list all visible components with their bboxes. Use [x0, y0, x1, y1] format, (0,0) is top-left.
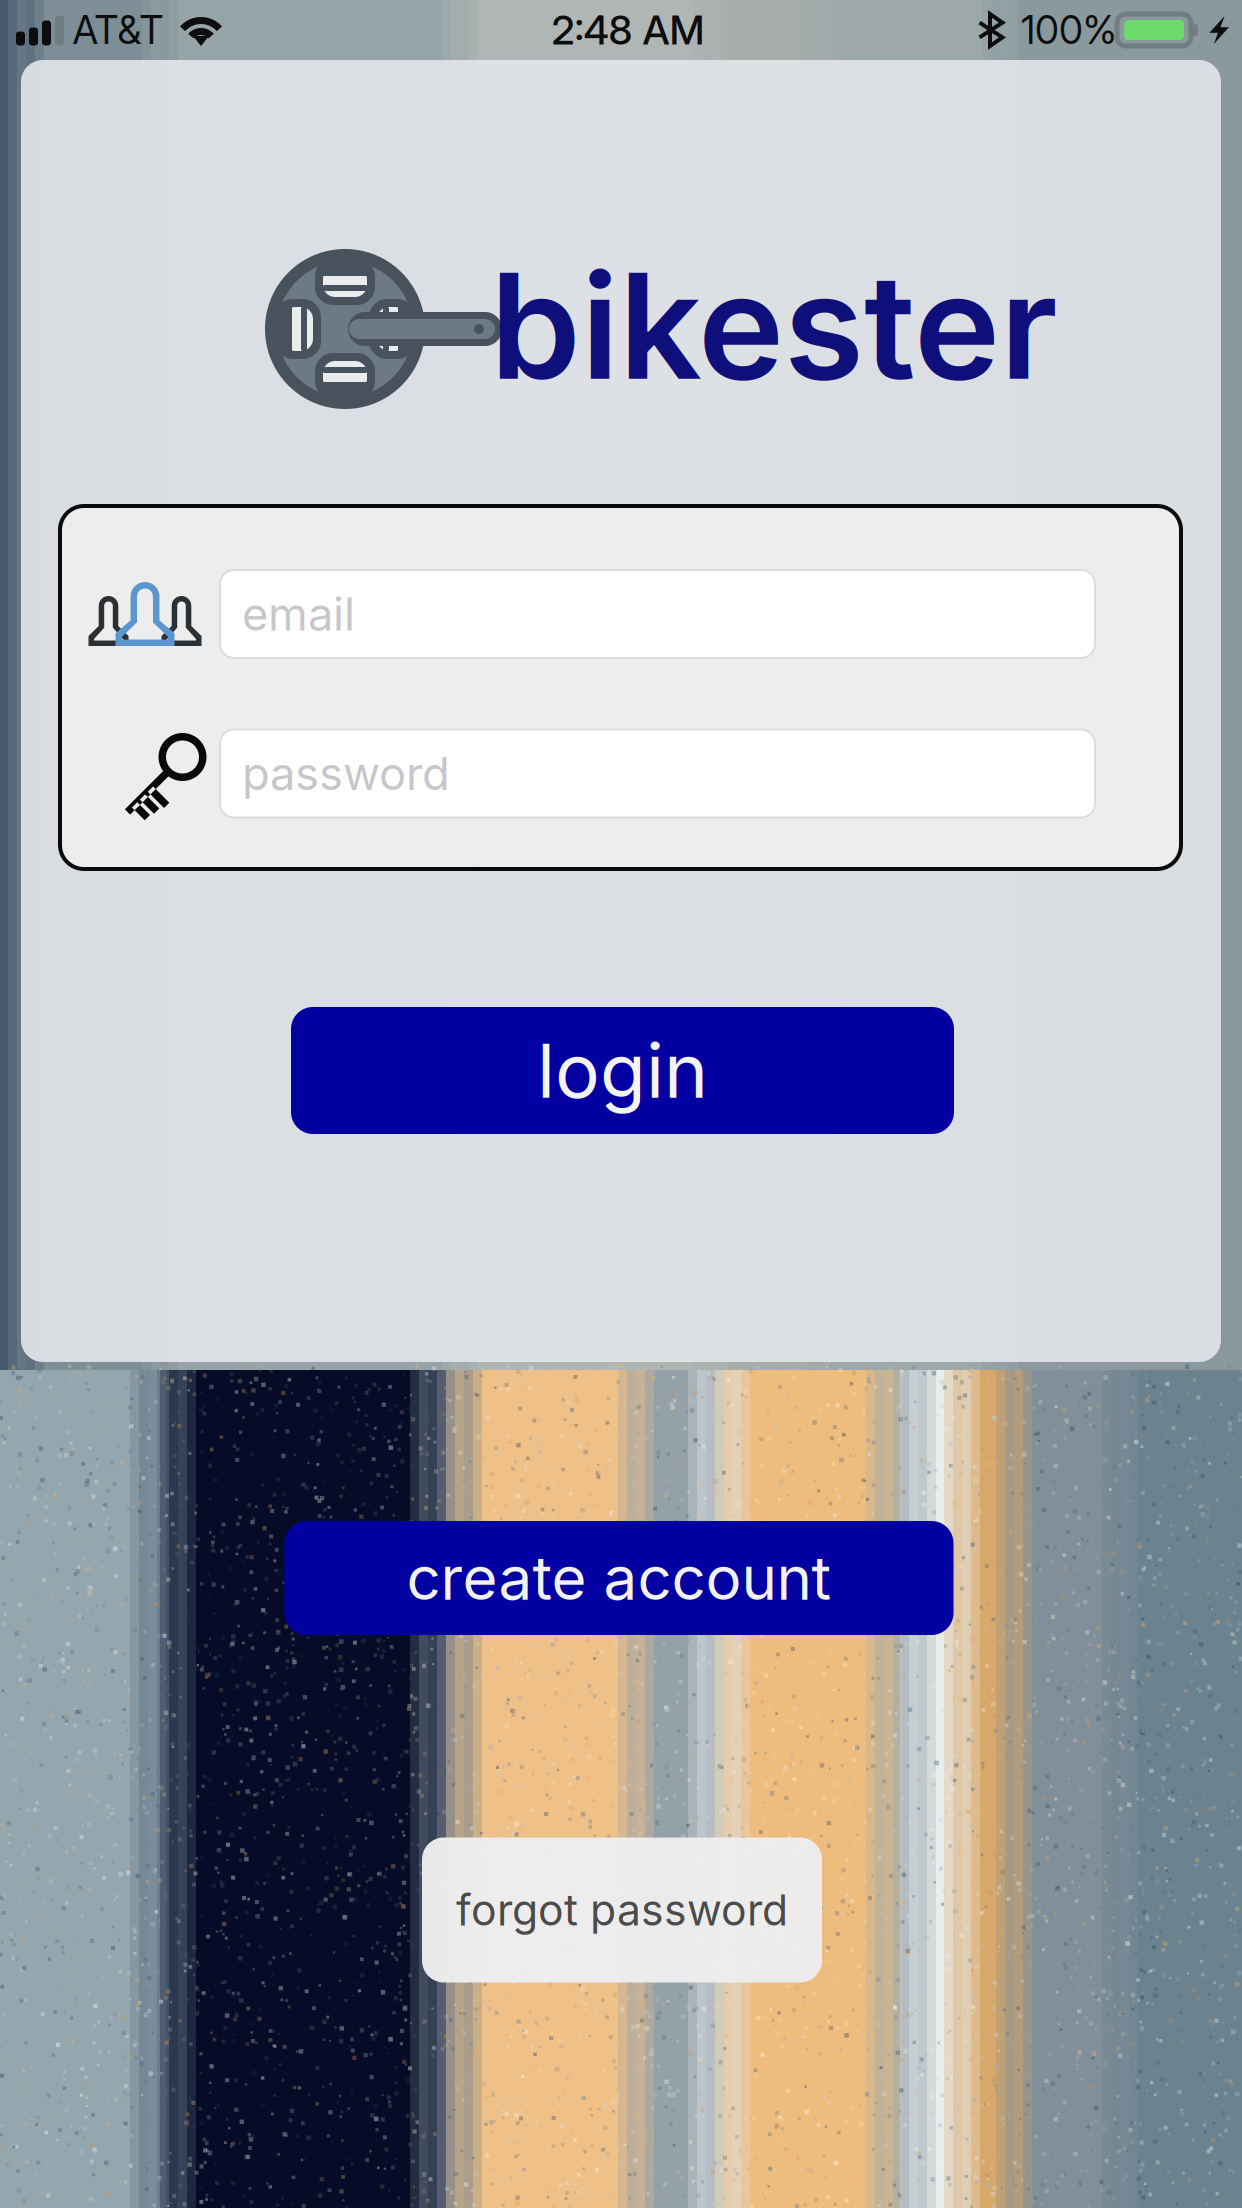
staticText: email: [242, 587, 355, 641]
button[interactable]: create account: [284, 1521, 953, 1635]
staticText: login: [537, 1025, 708, 1116]
staticText: AT&T: [72, 7, 163, 53]
button[interactable]: forgot password: [422, 1837, 822, 1982]
button[interactable]: login: [291, 1007, 954, 1134]
staticText: password: [242, 746, 450, 801]
staticText: bikester: [490, 238, 1058, 414]
staticText: 2:48 AM: [551, 6, 704, 54]
staticText: forgot password: [456, 1884, 788, 1936]
staticText: create account: [406, 1542, 831, 1614]
staticText: 100%: [1021, 7, 1117, 53]
